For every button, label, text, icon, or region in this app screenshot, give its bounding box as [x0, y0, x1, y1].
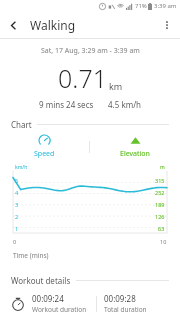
staticText: km	[109, 80, 123, 92]
button[interactable]: 00:09:24	[32, 293, 96, 314]
button[interactable]: 00:09:28	[104, 293, 169, 314]
staticText: m	[160, 164, 165, 171]
staticText: Walking	[30, 17, 76, 33]
staticText: Total duration	[104, 305, 147, 314]
staticText: 3:39 am	[154, 2, 177, 10]
staticText: 315	[155, 177, 165, 184]
staticText: 9 mins 24 secs	[39, 99, 94, 110]
staticText: Sat, 17 Aug, 3:29 am - 3:39 am	[41, 46, 140, 56]
staticText: km/h	[15, 164, 28, 171]
staticText: 10	[160, 238, 167, 245]
button[interactable]: Back	[0, 12, 26, 38]
staticText: Workout duration	[32, 305, 87, 314]
staticText: 00:09:28	[104, 293, 136, 304]
staticText: Elevation	[120, 149, 150, 159]
staticText: 189	[155, 201, 165, 208]
staticText: 00:09:24	[32, 293, 64, 304]
staticText: Speed	[34, 149, 55, 159]
staticText: 2	[15, 213, 19, 220]
staticText: Chart	[11, 119, 32, 130]
staticText: 252	[155, 189, 165, 196]
staticText: 126	[155, 213, 165, 220]
staticText: Time (mins)	[13, 251, 49, 260]
staticText: 63	[158, 225, 165, 232]
staticText: 3	[15, 201, 19, 208]
button[interactable]: More options	[154, 12, 180, 38]
staticText: 0.71	[58, 61, 107, 95]
staticText: 1	[15, 225, 19, 232]
staticText: Workout details	[11, 275, 71, 286]
staticText: 5	[15, 177, 19, 184]
button[interactable]: Elevation	[90, 134, 180, 159]
staticText: 4	[15, 189, 19, 196]
staticText: 0	[13, 238, 17, 245]
button[interactable]: Speed	[0, 134, 89, 159]
staticText: 4.5 km/h	[108, 99, 142, 110]
staticText: 71%	[135, 2, 147, 10]
